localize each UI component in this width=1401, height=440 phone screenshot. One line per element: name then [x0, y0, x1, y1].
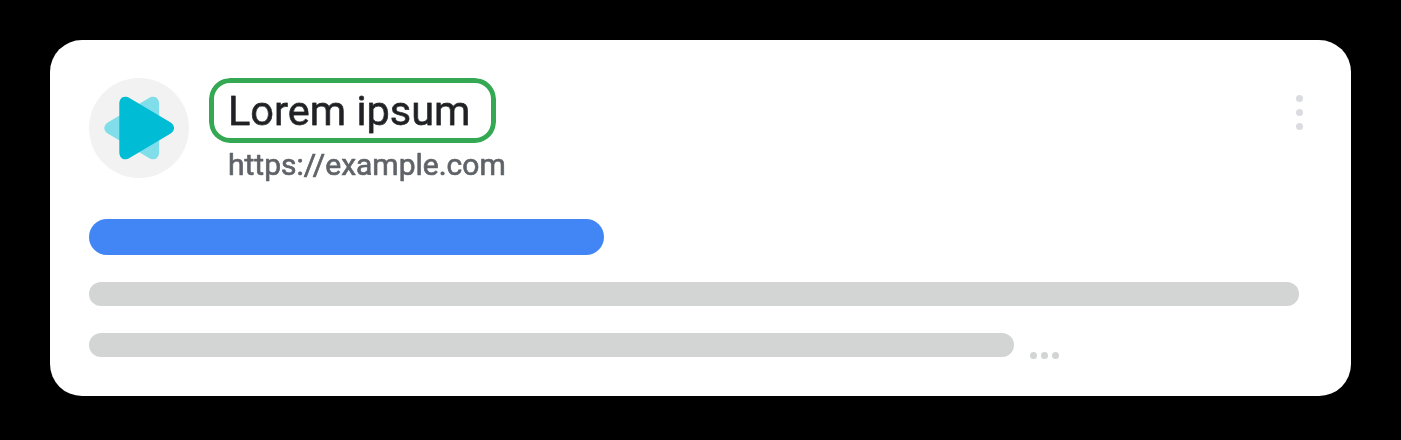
button[interactable]: Lorem ipsum — [209, 78, 496, 143]
button[interactable]: More options — [1275, 88, 1323, 136]
staticText: Lorem ipsum — [228, 86, 471, 135]
staticText: Lorem ipsum — [228, 86, 471, 135]
button[interactable]: Primary action — [89, 219, 604, 255]
button[interactable]: Site icon — [89, 78, 189, 178]
button[interactable]: https://example.com — [228, 147, 506, 182]
staticText: https://example.com — [228, 147, 506, 182]
staticText: https://example.com — [228, 147, 506, 182]
